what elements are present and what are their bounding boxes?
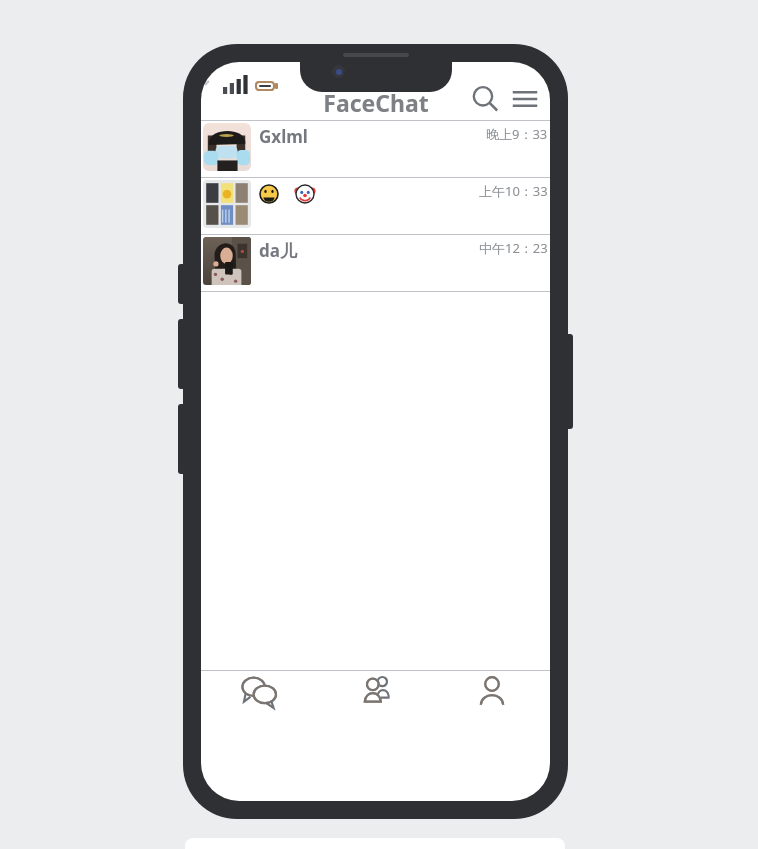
staticText: 中午12：23 <box>479 239 548 257</box>
staticText: 上午10：33 <box>479 182 548 200</box>
button[interactable]: da儿 <box>201 235 550 291</box>
button[interactable]: Contacts <box>318 671 434 733</box>
button[interactable]: Search <box>468 82 502 116</box>
button[interactable]: Chats <box>201 671 318 733</box>
staticText: Gxlml <box>259 125 308 148</box>
staticText: FaceChat <box>323 87 429 118</box>
button[interactable]: Menu <box>508 82 542 116</box>
staticText: da儿 <box>259 239 297 262</box>
button[interactable]: Gxlml <box>201 121 550 177</box>
staticText: 晚上9：33 <box>486 125 548 143</box>
button[interactable]: 上午10：33 <box>201 178 550 234</box>
button[interactable]: Profile <box>434 671 550 733</box>
